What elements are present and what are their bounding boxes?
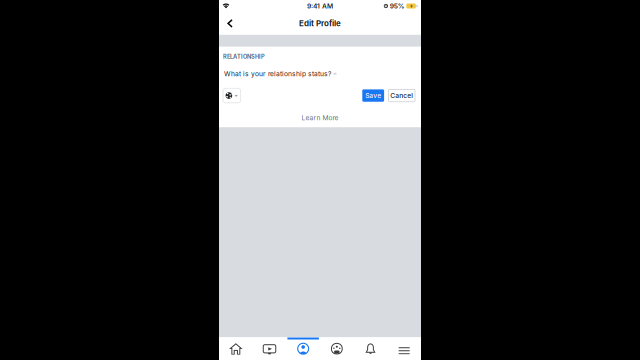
button[interactable]: Video — [253, 337, 286, 360]
button[interactable]: Learn More — [219, 109, 421, 127]
button[interactable]: Back — [219, 12, 240, 34]
button[interactable]: Profile — [286, 337, 320, 360]
staticText: 95% — [390, 2, 405, 10]
staticText: Cancel — [390, 91, 413, 100]
staticText: Learn More — [301, 114, 338, 122]
button[interactable]: Groups — [320, 337, 354, 360]
button[interactable]: Home — [219, 337, 253, 360]
button[interactable]: Cancel — [388, 89, 415, 102]
staticText: What is your relationship status? — [224, 70, 331, 78]
staticText: Edit Profile — [299, 19, 341, 28]
staticText: RELATIONSHIP — [223, 53, 265, 60]
staticText: 9:41 AM — [307, 2, 333, 10]
button[interactable]: Menu — [387, 337, 421, 360]
button[interactable]: Audience: Public — [223, 88, 241, 103]
button[interactable]: Save — [362, 89, 384, 102]
staticText: Save — [365, 91, 381, 100]
button[interactable]: Notifications — [354, 337, 387, 360]
